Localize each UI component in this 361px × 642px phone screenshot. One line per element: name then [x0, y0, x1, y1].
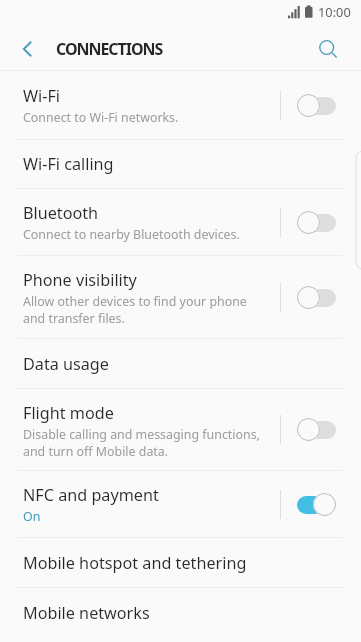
staticText: Phone visibility — [23, 269, 137, 291]
staticText: Mobile hotspot and tethering — [23, 552, 247, 574]
staticText: Connect to Wi-Fi networks. — [23, 109, 179, 126]
button[interactable]: Wi-Fi calling — [0, 140, 361, 188]
staticText: On — [23, 508, 41, 525]
button[interactable]: Wi-Fi — [0, 71, 361, 139]
staticText: Wi-Fi calling — [23, 153, 114, 175]
button[interactable]: Search — [305, 28, 361, 70]
button[interactable]: Flight mode — [0, 389, 361, 470]
button[interactable]: NFC and payment — [0, 471, 361, 537]
staticText: Connect to nearby Bluetooth devices. — [23, 226, 240, 243]
staticText: Data usage — [23, 353, 109, 375]
staticText: CONNECTIONS — [56, 38, 163, 60]
staticText: Disable calling and messaging functions,… — [23, 426, 260, 460]
staticText: Flight mode — [23, 402, 114, 424]
staticText: NFC and payment — [23, 484, 159, 506]
staticText: Bluetooth — [23, 202, 99, 224]
button[interactable]: Turn on — [280, 71, 361, 139]
button[interactable]: Navigate up — [0, 28, 56, 70]
button[interactable]: Turn off — [280, 471, 361, 537]
staticText: 10:00 — [318, 3, 351, 20]
button[interactable]: Phone visibility — [0, 256, 361, 338]
button[interactable]: Bluetooth — [0, 189, 361, 255]
button[interactable]: Mobile hotspot and tethering — [0, 538, 361, 587]
staticText: Wi-Fi — [23, 85, 61, 107]
button[interactable]: Turn on — [280, 389, 361, 470]
staticText: Mobile networks — [23, 602, 150, 624]
button[interactable]: Mobile networks — [0, 588, 361, 638]
staticText: Allow other devices to find your phone a… — [23, 293, 247, 327]
button[interactable]: Data usage — [0, 339, 361, 388]
button[interactable]: Turn on — [280, 256, 361, 338]
button[interactable]: Turn on — [280, 189, 361, 255]
